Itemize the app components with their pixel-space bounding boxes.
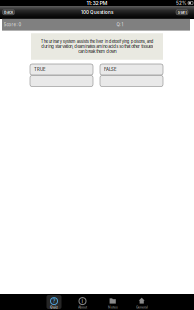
staticText: Back <box>4 10 13 15</box>
staticText: 11:32 PM <box>86 0 107 6</box>
button[interactable]: General <box>128 294 156 310</box>
staticText: About <box>78 305 87 309</box>
button[interactable]: Notes <box>99 294 127 310</box>
staticText: Quiz <box>50 305 58 309</box>
button[interactable]: Back <box>2 9 14 15</box>
staticText: Q: 1 <box>116 22 123 27</box>
button[interactable] <box>100 75 163 86</box>
staticText: The urinary system assists the liver in … <box>40 39 153 54</box>
button[interactable]: About <box>68 294 96 310</box>
staticText: 52% <box>176 0 187 6</box>
button[interactable]: TRUE <box>30 64 93 75</box>
staticText: TRUE <box>34 67 46 72</box>
staticText: General <box>136 305 148 309</box>
staticText: Score : 0 <box>3 22 21 27</box>
staticText: ? <box>52 298 55 304</box>
button[interactable]: Start <box>176 9 188 15</box>
button[interactable]: FALSE <box>100 64 163 75</box>
staticText: Start <box>177 10 186 15</box>
staticText: 100 Questions <box>81 10 113 15</box>
button[interactable]: Quiz <box>40 294 68 310</box>
button[interactable] <box>30 75 93 86</box>
staticText: FALSE <box>104 67 117 72</box>
staticText: i <box>81 298 83 304</box>
staticText: Notes <box>108 305 118 309</box>
